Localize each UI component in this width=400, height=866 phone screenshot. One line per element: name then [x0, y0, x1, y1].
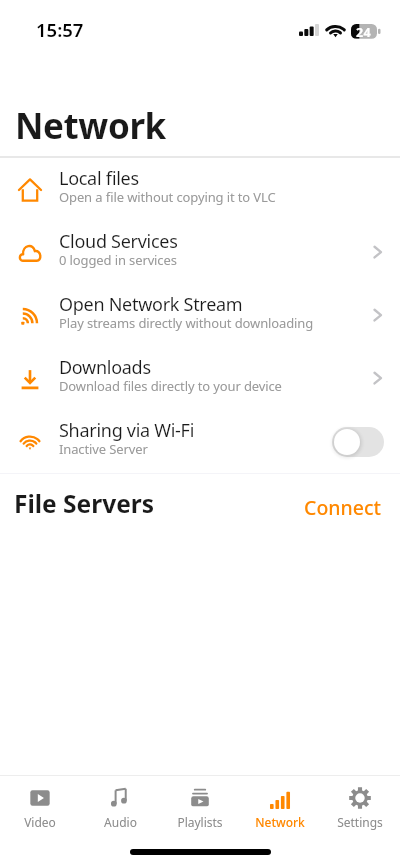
staticText: Network [255, 814, 305, 830]
staticText: Play streams directly without downloadin… [59, 314, 314, 332]
staticText: Open a file without copying it to VLC [59, 188, 276, 206]
staticText: Audio [104, 814, 137, 830]
staticText: Settings [337, 814, 383, 830]
button[interactable]: Open Network Stream [0, 284, 400, 347]
staticText: 24 [356, 24, 372, 41]
staticText: Downloads [59, 355, 151, 380]
button[interactable]: Cloud Services [0, 221, 400, 284]
button[interactable]: Audio [80, 776, 160, 830]
staticText: Video [24, 814, 56, 830]
staticText: Sharing via Wi-Fi [59, 418, 195, 443]
staticText: Download files directly to your device [59, 377, 282, 395]
staticText: 15:57 [36, 17, 84, 42]
button[interactable]: Connect [298, 483, 384, 526]
staticText: 0 logged in services [59, 251, 177, 269]
staticText: Inactive Server [59, 440, 148, 458]
button[interactable]: Settings [320, 776, 400, 830]
button[interactable]: Local files [0, 158, 400, 221]
staticText: Open Network Stream [59, 292, 243, 317]
button[interactable]: Network [240, 776, 320, 830]
staticText: Playlists [177, 814, 223, 830]
button[interactable]: Video [0, 776, 80, 830]
button[interactable]: Playlists [160, 776, 240, 830]
staticText: File Servers [14, 487, 155, 520]
staticText: Cloud Services [59, 229, 178, 254]
staticText: Connect [304, 494, 381, 521]
staticText: Local files [59, 166, 139, 191]
staticText: Network [15, 102, 166, 150]
button[interactable]: Sharing via Wi-Fi toggle [332, 427, 384, 457]
button[interactable]: Downloads [0, 347, 400, 410]
button[interactable]: Sharing via Wi-Fi [0, 410, 400, 473]
